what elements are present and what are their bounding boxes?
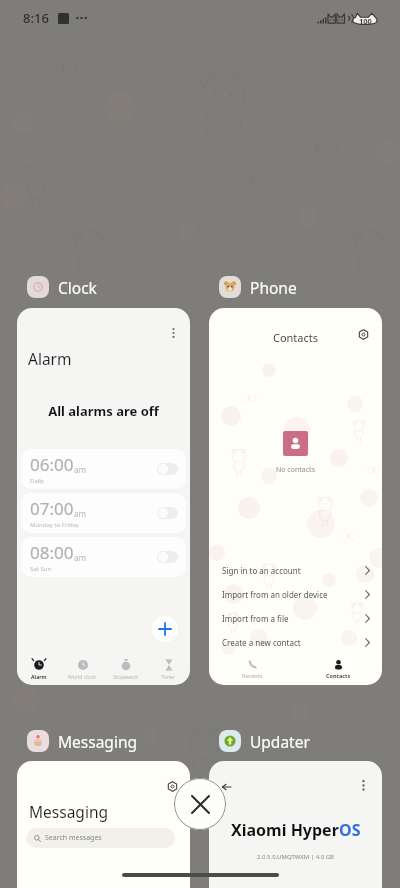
staticText: Updater	[250, 731, 310, 752]
button[interactable]: More options	[357, 779, 369, 791]
staticText: Contacts	[209, 330, 382, 345]
staticText: Messaging	[58, 731, 137, 752]
staticText: 06:00	[30, 453, 74, 476]
staticText: Recents	[242, 672, 263, 679]
button[interactable]: Settings	[355, 326, 371, 342]
staticText: Alarm	[31, 673, 47, 680]
button[interactable]: Timer	[147, 659, 190, 680]
staticText: Alarm	[28, 348, 72, 369]
button[interactable]: Sign in to an account	[222, 558, 370, 582]
staticText: Phone	[250, 277, 297, 298]
button[interactable]: Stopwatch	[104, 659, 147, 680]
button[interactable]: Create a new contact	[222, 630, 370, 654]
button[interactable]: Contacts	[295, 659, 382, 679]
staticText: Sat Sun	[30, 565, 52, 573]
button[interactable]: Recents	[209, 659, 295, 679]
staticText: World clock	[68, 673, 97, 680]
staticText: Timer	[161, 673, 176, 680]
staticText: Import from a file	[222, 613, 289, 624]
staticText: 100	[359, 16, 372, 26]
staticText: Stopwatch	[113, 673, 139, 680]
button[interactable]: Add alarm	[152, 616, 178, 642]
button[interactable]: Toggle alarm	[157, 551, 178, 563]
button[interactable]: World clock	[61, 659, 104, 680]
staticText: No contacts	[276, 465, 315, 475]
staticText: 2.0.5.0.UMQTWXM | 4.0 GB	[209, 853, 382, 861]
button[interactable]: Settings	[165, 779, 180, 794]
staticText: OS	[339, 819, 361, 841]
staticText: 07:00	[30, 497, 74, 520]
staticText: Search messages	[45, 833, 102, 843]
staticText: Import from an older device	[222, 589, 328, 600]
button[interactable]: Import from an older device	[222, 582, 370, 606]
staticText: Xiaomi Hyper	[231, 819, 339, 841]
staticText: Monday to Friday	[30, 521, 80, 529]
staticText: am	[74, 552, 86, 563]
staticText: am	[74, 464, 86, 475]
staticText: Clock	[58, 277, 97, 298]
button[interactable]: More options	[167, 327, 179, 339]
staticText: Daily	[30, 477, 44, 485]
staticText: 08:00	[30, 541, 74, 564]
button[interactable]: Back	[219, 780, 233, 794]
button[interactable]: 08:00	[21, 537, 186, 577]
staticText: All alarms are off	[17, 402, 190, 420]
button[interactable]: 06:00	[21, 449, 186, 489]
button[interactable]: Toggle alarm	[157, 507, 178, 519]
staticText: Contacts	[326, 672, 351, 679]
staticText: Create a new contact	[222, 637, 301, 648]
staticText: am	[74, 508, 86, 519]
staticText: 8:16	[23, 9, 49, 27]
button[interactable]: 07:00	[21, 493, 186, 533]
button[interactable]: Toggle alarm	[157, 463, 178, 475]
staticText: Messaging	[29, 801, 108, 822]
staticText: Sign in to an account	[222, 565, 301, 576]
button[interactable]: Search messages	[26, 828, 175, 848]
button[interactable]: Alarm	[17, 659, 61, 680]
button[interactable]: Import from a file	[222, 606, 370, 630]
button[interactable]: Close all apps	[174, 778, 226, 830]
